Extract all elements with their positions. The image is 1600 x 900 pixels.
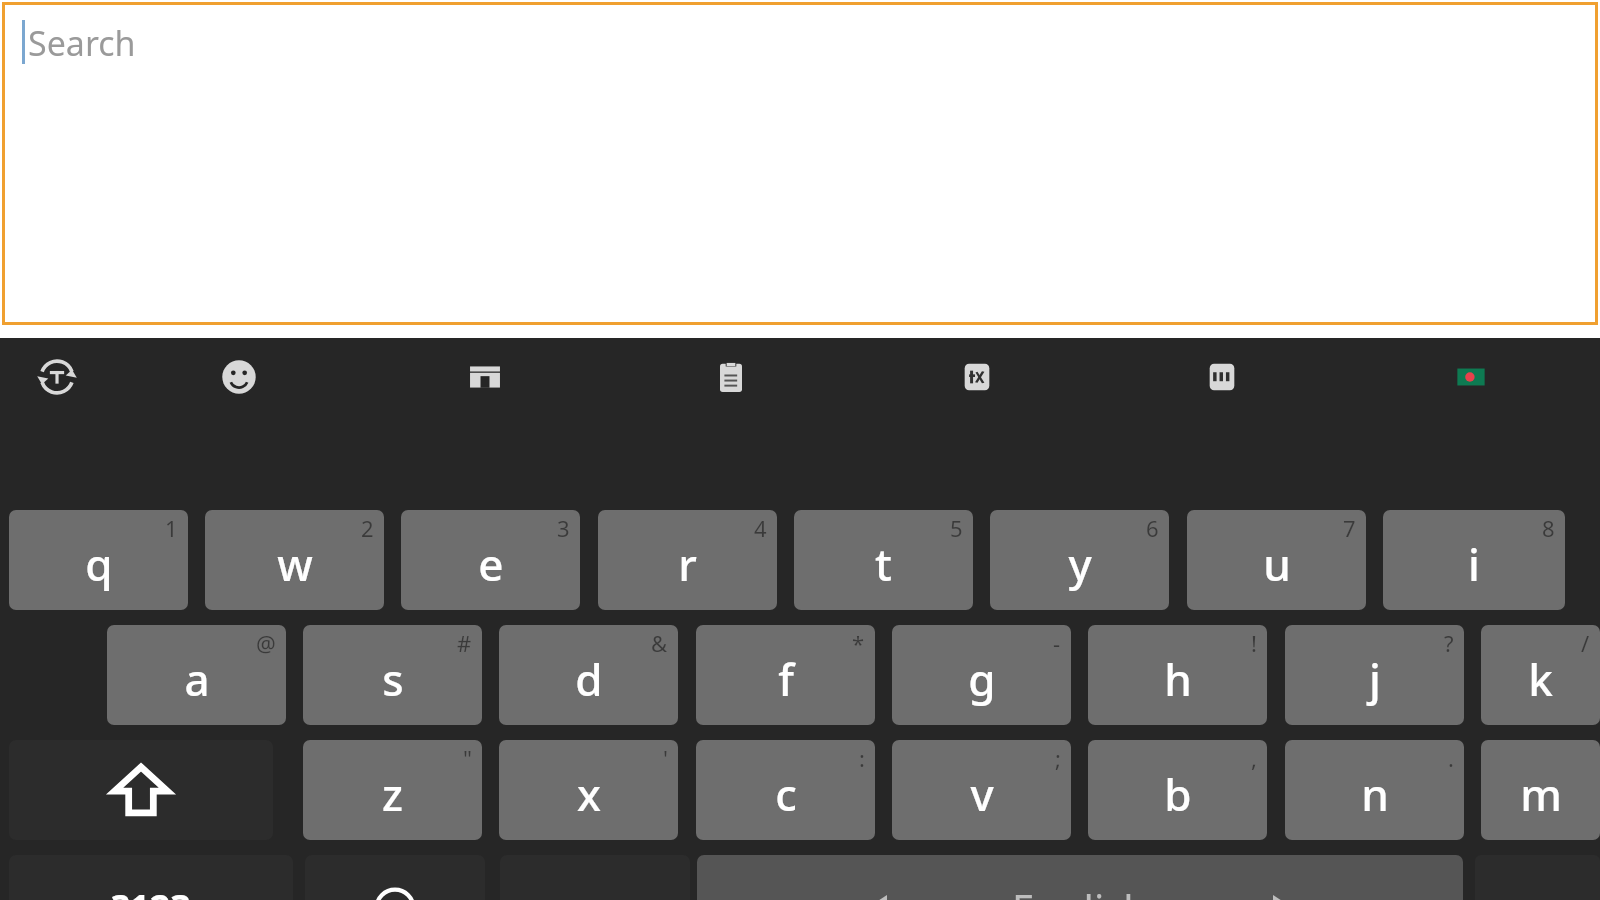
staticText: ! (1251, 628, 1257, 658)
button[interactable]: 6 (990, 510, 1169, 610)
staticText: z (382, 764, 403, 824)
staticText: g (968, 649, 996, 709)
button[interactable]: Emoji (305, 855, 485, 900)
button[interactable]: 2 (205, 510, 384, 610)
staticText: x (577, 764, 601, 824)
button[interactable]: Search (2, 2, 1598, 325)
button[interactable]: 7 (1187, 510, 1366, 610)
staticText: ; (1055, 743, 1061, 773)
button[interactable]: ' (499, 740, 678, 840)
button[interactable]: m (1481, 740, 1600, 840)
staticText: / (1581, 628, 1590, 658)
button[interactable]: * (696, 625, 875, 725)
staticText: # (457, 628, 472, 658)
button[interactable]: Numbers (1194, 349, 1250, 405)
button[interactable]: # (303, 625, 482, 725)
staticText: 3 (557, 513, 570, 543)
staticText: * (852, 628, 865, 658)
staticText: k (1528, 649, 1553, 709)
button[interactable]: @ (107, 625, 286, 725)
staticText: h (1164, 649, 1192, 709)
button[interactable]: Space (697, 855, 1463, 900)
button[interactable]: , (1088, 740, 1267, 840)
staticText: f (778, 649, 794, 709)
button[interactable]: . (1285, 740, 1464, 840)
button[interactable]: 1 (9, 510, 188, 610)
staticText: - (1053, 628, 1061, 658)
button[interactable]: Shift (9, 740, 273, 840)
button[interactable]: 4 (598, 510, 777, 610)
staticText: . (1448, 743, 1454, 773)
staticText: b (1164, 764, 1192, 824)
staticText: 5 (950, 513, 963, 543)
staticText: m (1520, 764, 1562, 824)
staticText: j (1369, 649, 1381, 709)
staticText: English (1012, 881, 1149, 900)
button[interactable]: Language (1443, 349, 1499, 405)
staticText: n (1361, 764, 1389, 824)
button[interactable]: 3 (401, 510, 580, 610)
staticText: Search (28, 20, 136, 66)
staticText: 1 (165, 513, 178, 543)
button[interactable]: 8 (1383, 510, 1565, 610)
button[interactable]: Sticker store (457, 349, 513, 405)
staticText: 6 (1146, 513, 1159, 543)
staticText: w (277, 534, 313, 594)
staticText: v (970, 764, 994, 824)
staticText: u (1263, 534, 1291, 594)
staticText: y (1068, 534, 1092, 594)
staticText: a (184, 649, 210, 709)
button[interactable]: & (499, 625, 678, 725)
button[interactable]: " (303, 740, 482, 840)
button[interactable]: Translate (29, 349, 85, 405)
staticText: , (1251, 743, 1257, 773)
button[interactable]: 5 (794, 510, 973, 610)
button[interactable]: : (696, 740, 875, 840)
staticText: @ (256, 628, 276, 658)
staticText: 7 (1343, 513, 1356, 543)
staticText: t (875, 534, 892, 594)
staticText: & (651, 628, 668, 658)
button[interactable]: ?123 (9, 855, 293, 900)
staticText: e (478, 534, 504, 594)
staticText: i (1468, 534, 1480, 594)
staticText: " (463, 743, 472, 773)
staticText: 2 (361, 513, 374, 543)
button[interactable]: / (1481, 625, 1600, 725)
staticText: c (775, 764, 797, 824)
staticText: q (85, 534, 113, 594)
staticText: ?123 (112, 883, 191, 900)
staticText: s (382, 649, 404, 709)
staticText: d (575, 649, 603, 709)
staticText: : (859, 743, 865, 773)
staticText: r (678, 534, 697, 594)
button[interactable]: Clipboard (703, 349, 759, 405)
button[interactable]: Emoji (211, 349, 267, 405)
button[interactable]: Text editing (949, 349, 1005, 405)
staticText: ' (663, 743, 668, 773)
staticText: 8 (1542, 513, 1555, 543)
staticText: 4 (754, 513, 767, 543)
button[interactable]: ? (1285, 625, 1464, 725)
button[interactable]: - (892, 625, 1071, 725)
button[interactable]: ; (892, 740, 1071, 840)
button[interactable]: ! (1088, 625, 1267, 725)
staticText: ? (1444, 628, 1454, 658)
